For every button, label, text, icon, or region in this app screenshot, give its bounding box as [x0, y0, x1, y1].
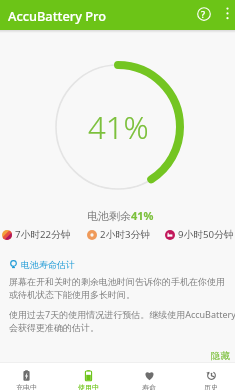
button[interactable]: 2小时3分钟 — [87, 228, 150, 241]
staticText: 41% — [88, 106, 149, 148]
button[interactable]: 历史 — [180, 362, 235, 390]
staticText: 使用中 — [78, 383, 99, 390]
staticText: 使用过去7天的使用情况进行预估。继续使用AccuBattery 会获得更准确的估… — [9, 308, 235, 333]
button[interactable]: 寿命 — [118, 362, 180, 390]
staticText: 历史 — [204, 383, 218, 390]
staticText: 屏幕在开和关时的剩余电池时间告诉你的手机在你使用 或待机状态下能使用多长时间。 — [9, 276, 225, 300]
staticText: 寿命 — [142, 383, 156, 390]
staticText: 电池寿命估计 — [21, 259, 75, 270]
staticText: 9小时50分钟 — [178, 228, 234, 241]
button[interactable]: 9小时50分钟 — [165, 228, 234, 241]
button[interactable]: 7小时22分钟 — [2, 228, 71, 241]
staticText: AccuBattery Pro — [8, 7, 107, 24]
staticText: 7小时22分钟 — [15, 228, 71, 241]
staticText: ? — [201, 8, 206, 20]
button[interactable]: Help — [190, 0, 217, 27]
button[interactable]: 隐藏 — [206, 346, 235, 366]
staticText: 充电中 — [16, 383, 37, 390]
button[interactable]: More options — [214, 0, 235, 27]
button[interactable]: 使用中 — [57, 362, 119, 390]
staticText: 电池剩余41% — [87, 208, 154, 223]
button[interactable]: 充电中 — [0, 362, 57, 390]
staticText: 2小时3分钟 — [100, 228, 150, 241]
button[interactable]: 电池寿命估计 — [9, 259, 75, 270]
staticText: 隐藏 — [211, 350, 230, 362]
